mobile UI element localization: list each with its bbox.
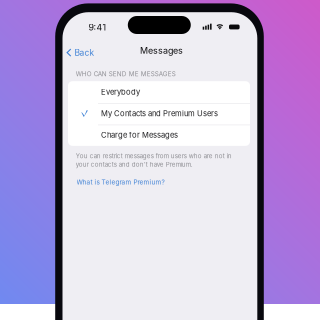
button[interactable]: What is Telegram Premium? [75, 176, 167, 188]
button[interactable]: Back [64, 44, 96, 61]
staticText: your contacts and don't have Premium. [76, 161, 193, 168]
button[interactable]: Charge for Messages [68, 124, 250, 146]
staticText: Messages [140, 45, 183, 56]
staticText: My Contacts and Premium Users [101, 109, 218, 118]
staticText: Back [74, 47, 94, 58]
button[interactable]: My Contacts and Premium Users [68, 103, 250, 124]
staticText: Charge for Messages [101, 130, 178, 140]
staticText: Everybody [101, 87, 140, 97]
staticText: WHO CAN SEND ME MESSAGES [76, 70, 176, 78]
staticText: You can restrict messages from users who… [76, 152, 232, 160]
staticText: What is Telegram Premium? [77, 178, 165, 186]
button[interactable]: Everybody [68, 81, 250, 103]
staticText: 9:41 [88, 22, 106, 33]
